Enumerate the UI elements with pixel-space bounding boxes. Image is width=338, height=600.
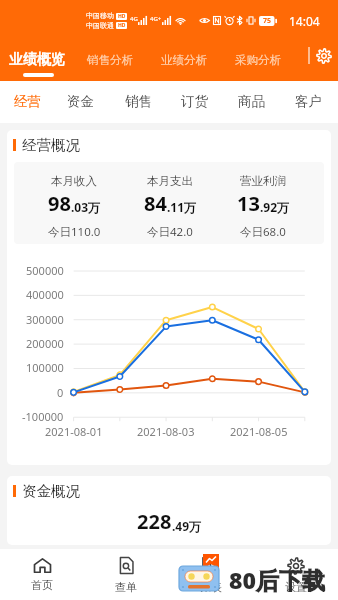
staticText: 经营概况 [22,136,80,154]
staticText: 中国联通 [86,21,114,30]
button[interactable]: 业绩分析 [148,30,220,81]
staticText: 客户 [295,93,322,110]
staticText: 采购分析 [235,53,281,67]
staticText: 80后下载 [229,564,325,595]
button[interactable]: 订货 [169,81,219,123]
staticText: 今日110.0 [48,224,101,240]
staticText: 75 [263,16,272,26]
staticText: 销售分析 [87,53,133,67]
staticText: 报表 [200,580,222,594]
button[interactable]: 经营 [2,81,52,123]
staticText: 300000 [26,312,64,327]
staticText: 4G [130,15,138,23]
staticText: 业绩概览 [9,51,65,69]
staticText: 本月收入 [51,174,97,188]
staticText: 资金 [67,93,94,110]
button[interactable]: 销售分析 [74,30,146,81]
staticText: 经营 [14,93,41,110]
staticText: .11万 [167,199,197,215]
button[interactable]: 采购分析 [222,30,294,81]
staticText: 13 [237,190,260,217]
button[interactable]: 资金 [55,81,105,123]
staticText: 查单 [115,580,137,594]
staticText: HD [118,13,126,20]
staticText: 500000 [26,263,64,278]
staticText: 200000 [26,336,64,351]
staticText: 中国移动 [86,11,114,20]
staticText: 本月支出 [147,174,193,188]
staticText: HD [118,22,126,29]
button[interactable]: 报表 [168,549,253,600]
button[interactable]: 客户 [283,81,333,123]
staticText: 14:04 [289,13,320,29]
staticText: 84 [144,190,167,217]
staticText: 业绩分析 [161,53,207,67]
staticText: 订货 [181,93,208,110]
staticText: 2021-08-01 [45,424,103,439]
staticText: 400000 [26,287,64,302]
button[interactable]: 设置 [253,549,338,600]
staticText: 商品 [238,93,265,110]
staticText: 今日68.0 [240,224,286,240]
staticText: 4G+ [150,15,162,23]
staticText: 228 [137,508,172,535]
staticText: 2021-08-03 [137,424,195,439]
staticText: 0 [57,385,64,400]
staticText: 营业利润 [240,174,286,188]
staticText: -100000 [22,409,64,424]
staticText: 100000 [26,360,64,375]
staticText: 2021-08-05 [230,424,288,439]
staticText: 98 [48,190,71,217]
button[interactable]: 商品 [226,81,276,123]
staticText: 今日42.0 [147,224,193,240]
button[interactable]: 设置 [314,46,334,66]
staticText: 首页 [31,578,53,592]
button[interactable]: 业绩概览 [1,30,73,81]
button[interactable]: 销售 [113,81,163,123]
staticText: 销售 [125,93,152,110]
button[interactable]: 查单 [84,549,168,600]
staticText: 设置 [285,580,307,594]
staticText: .03万 [71,199,101,215]
staticText: .49万 [172,518,202,534]
staticText: 资金概况 [22,482,80,500]
button[interactable]: 首页 [0,549,84,600]
staticText: .92万 [260,199,290,215]
